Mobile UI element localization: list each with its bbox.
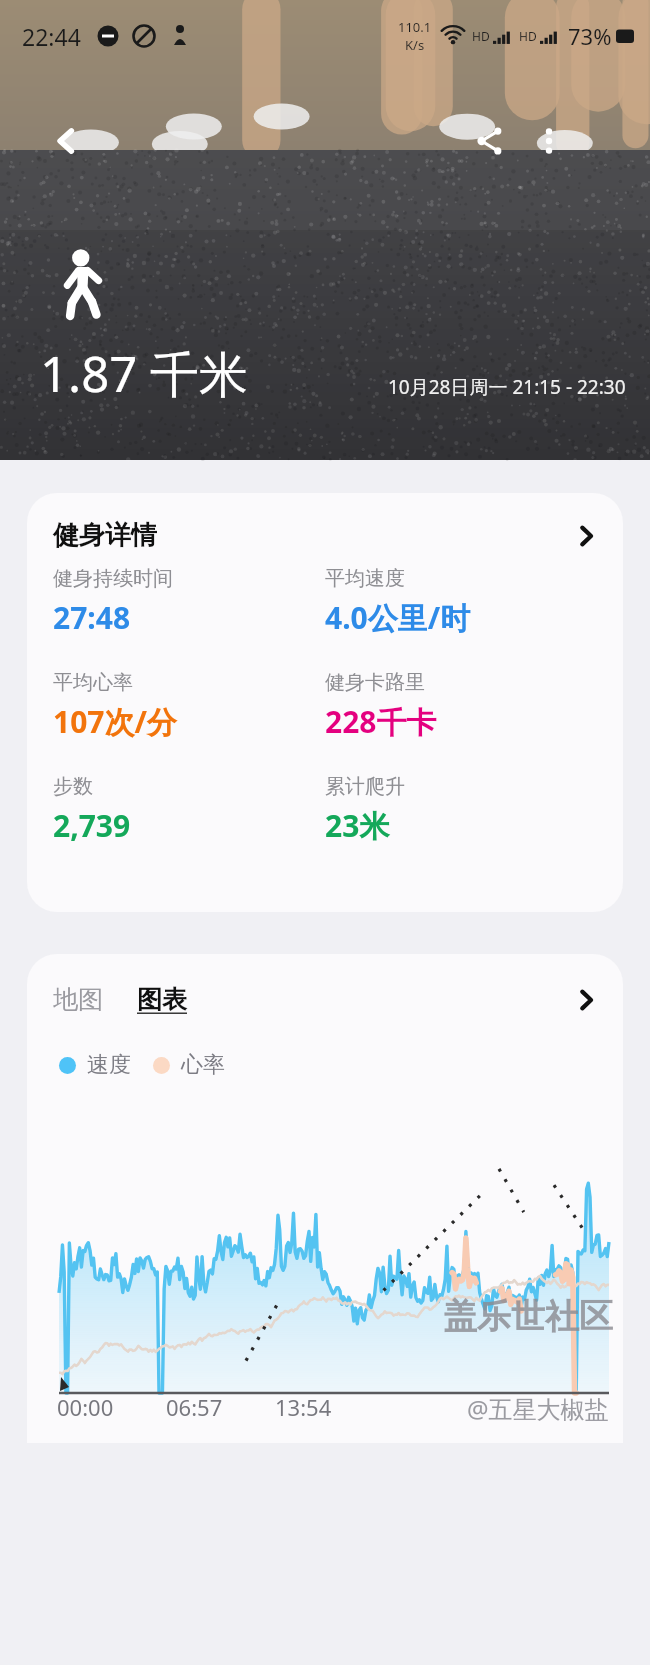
button[interactable]: 累计爬升 bbox=[325, 774, 597, 846]
staticText: 速度 bbox=[87, 1051, 131, 1079]
staticText: 健身持续时间 bbox=[53, 566, 173, 591]
button[interactable]: 健身卡路里 bbox=[325, 670, 597, 742]
button[interactable]: 健身详情 bbox=[27, 493, 623, 566]
staticText: 2,739 bbox=[53, 805, 131, 846]
staticText: 23米 bbox=[325, 805, 390, 846]
staticText: HD bbox=[472, 28, 490, 44]
button[interactable]: 地图 bbox=[53, 984, 103, 1015]
staticText: 22:44 bbox=[22, 21, 81, 52]
button[interactable]: 步数 bbox=[53, 774, 325, 846]
staticText: @五星大椒盐 bbox=[467, 1392, 609, 1425]
staticText: 平均心率 bbox=[53, 670, 133, 695]
button[interactable]: Share bbox=[462, 113, 518, 169]
staticText: 110.1 bbox=[398, 18, 432, 36]
button[interactable]: 平均心率 bbox=[53, 670, 325, 742]
staticText: 00:00 bbox=[57, 1392, 114, 1422]
staticText: 累计爬升 bbox=[325, 774, 405, 799]
button[interactable]: 平均速度 bbox=[325, 566, 597, 638]
staticText: 健身详情 bbox=[53, 519, 157, 552]
staticText: 10月28日周一 21:15 - 22:30 bbox=[388, 374, 626, 400]
button[interactable]: More options bbox=[521, 113, 577, 169]
button[interactable]: Open chart bbox=[575, 989, 597, 1011]
staticText: 心率 bbox=[181, 1051, 225, 1079]
staticText: 06:57 bbox=[166, 1392, 223, 1422]
staticText: 步数 bbox=[53, 774, 93, 799]
staticText: 27:48 bbox=[53, 597, 131, 638]
button[interactable]: 健身持续时间 bbox=[53, 566, 325, 638]
staticText: 平均速度 bbox=[325, 566, 405, 591]
staticText: 地图 bbox=[53, 984, 103, 1015]
button[interactable]: 图表 bbox=[137, 984, 187, 1015]
staticText: 盖乐世社区 bbox=[443, 1295, 613, 1338]
staticText: 73% bbox=[568, 21, 612, 51]
staticText: 图表 bbox=[137, 984, 187, 1015]
staticText: 228千卡 bbox=[325, 701, 437, 742]
staticText: 107次/分 bbox=[53, 701, 177, 742]
staticText: K/s bbox=[405, 36, 425, 54]
staticText: 4.0公里/时 bbox=[325, 597, 471, 638]
staticText: HD bbox=[519, 28, 537, 44]
button[interactable]: Back bbox=[38, 113, 94, 169]
staticText: 1.87 千米 bbox=[40, 340, 248, 407]
staticText: 13:54 bbox=[275, 1392, 332, 1422]
staticText: 健身卡路里 bbox=[325, 670, 425, 695]
